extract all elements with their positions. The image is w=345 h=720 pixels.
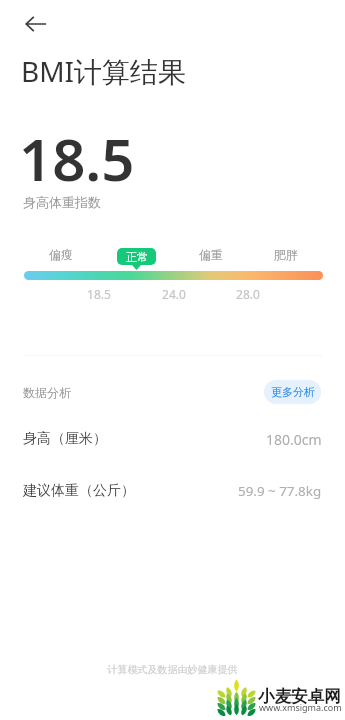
- staticText: 59.9 ~ 77.8kg: [238, 482, 322, 500]
- staticText: 肥胖: [261, 247, 311, 262]
- button[interactable]: Back: [12, 0, 60, 48]
- staticText: 身高（厘米）: [23, 430, 107, 448]
- staticText: 偏瘦: [36, 247, 86, 262]
- staticText: 18.5: [79, 286, 119, 302]
- staticText: 18.5: [19, 119, 135, 198]
- staticText: 建议体重（公斤）: [23, 482, 135, 500]
- staticText: 24.0: [154, 286, 194, 302]
- staticText: 正常: [126, 250, 148, 264]
- staticText: www.xmsigma.com: [259, 701, 342, 713]
- button[interactable]: 正常: [117, 248, 156, 265]
- staticText: 数据分析: [23, 385, 71, 400]
- button[interactable]: 更多分析: [264, 380, 321, 404]
- staticText: 身高体重指数: [23, 194, 101, 210]
- staticText: 计算模式及数据由妙健康提供: [0, 663, 345, 676]
- staticText: BMI计算结果: [21, 52, 187, 90]
- button[interactable]: 建议体重（公斤）: [23, 477, 322, 505]
- staticText: 28.0: [228, 286, 268, 302]
- staticText: 180.0cm: [266, 430, 322, 449]
- staticText: 偏重: [186, 247, 236, 262]
- staticText: 小麦安卓网: [258, 686, 341, 707]
- button[interactable]: 身高（厘米）: [23, 425, 322, 453]
- staticText: 更多分析: [271, 385, 315, 399]
